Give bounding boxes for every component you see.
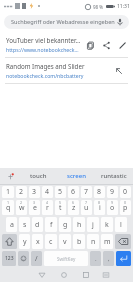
staticText: j (92, 220, 94, 230)
button[interactable]: Backspace (115, 234, 131, 249)
button[interactable]: runtastic (95, 168, 133, 184)
button[interactable]: Shift (2, 234, 17, 249)
button[interactable]: 1 (2, 200, 14, 215)
staticText: SwiftKey (57, 256, 76, 262)
staticText: p (123, 203, 128, 213)
staticText: . (95, 255, 97, 263)
button[interactable]: h (73, 217, 85, 232)
button[interactable]: touch (20, 168, 57, 184)
staticText: t (59, 203, 62, 213)
button[interactable]: Hide keyboard (100, 269, 112, 281)
button[interactable]: k (101, 217, 113, 232)
button[interactable]: Copy (82, 37, 98, 53)
button[interactable]: g (59, 217, 71, 232)
staticText: 2 (19, 187, 24, 197)
button[interactable]: b (73, 234, 85, 249)
button[interactable]: 6 (68, 186, 79, 198)
button[interactable]: 0 (120, 200, 131, 215)
button[interactable]: / (31, 251, 42, 266)
staticText: 6 (71, 187, 76, 197)
button[interactable]: 9 (107, 200, 118, 215)
staticText: x (36, 237, 40, 247)
button[interactable]: Edit (114, 37, 130, 53)
button[interactable]: Insert suggestion (111, 63, 127, 79)
staticText: 0 (124, 200, 127, 205)
button[interactable]: Recents (80, 269, 92, 281)
staticText: 9 (110, 187, 115, 197)
staticText: 1 (7, 200, 10, 205)
button[interactable]: 9 (107, 186, 118, 198)
staticText: screen (67, 172, 86, 180)
staticText: r (46, 203, 49, 213)
staticText: u (84, 203, 89, 213)
button[interactable]: j (87, 217, 99, 232)
staticText: 3 (32, 187, 37, 197)
button[interactable]: YouTuber viel bekannter… (0, 32, 133, 57)
button[interactable]: 5 (55, 200, 66, 215)
button[interactable]: 4 (42, 200, 53, 215)
button[interactable]: Stickers (0, 168, 20, 184)
staticText: YouTuber viel bekannter… (6, 36, 81, 44)
button[interactable]: 8 (94, 186, 105, 198)
button[interactable]: 0 (120, 186, 131, 198)
button[interactable]: n (87, 234, 99, 249)
button[interactable]: Enter (116, 251, 131, 266)
staticText: touch (30, 172, 47, 180)
button[interactable]: l (115, 217, 127, 232)
staticText: d (35, 220, 40, 230)
staticText: 123 (5, 255, 14, 262)
staticText: 8 (97, 187, 102, 197)
button[interactable]: 7 (81, 200, 92, 215)
staticText: 3 (33, 200, 36, 205)
staticText: 7 (85, 200, 88, 205)
button[interactable]: 1 (2, 186, 14, 198)
staticText: 5 (59, 200, 62, 205)
button[interactable]: Back (36, 269, 48, 281)
staticText: 7 (84, 187, 89, 197)
button[interactable]: Share (98, 37, 114, 53)
button[interactable]: Home (58, 269, 70, 281)
button[interactable]: Suchbegriff oder Webadresse eingeben (4, 15, 129, 29)
button[interactable]: d (32, 217, 43, 232)
staticText: 0 (123, 187, 128, 197)
button[interactable]: y (19, 234, 30, 249)
staticText: notebookcheck.com/nbcbattery (6, 72, 84, 79)
button[interactable]: 5 (55, 186, 66, 198)
staticText: c (49, 237, 53, 247)
button[interactable]: x (32, 234, 43, 249)
button[interactable]: 3 (29, 200, 40, 215)
button[interactable]: s (19, 217, 30, 232)
button[interactable]: 2 (16, 186, 27, 198)
staticText: runtastic (101, 172, 127, 180)
button[interactable]: . (90, 251, 101, 266)
button[interactable]: 3 (29, 186, 40, 198)
button[interactable]: 4 (42, 186, 53, 198)
button[interactable]: f (45, 217, 57, 232)
button[interactable]: c (45, 234, 57, 249)
staticText: 4 (46, 200, 49, 205)
staticText: 98 % (93, 4, 104, 10)
button[interactable]: 2 (16, 200, 27, 215)
button[interactable]: Space (44, 251, 88, 266)
button[interactable]: m (101, 234, 113, 249)
button[interactable]: 6 (68, 200, 79, 215)
button[interactable]: screen (57, 168, 95, 184)
staticText: 6 (72, 200, 75, 205)
staticText: n (91, 237, 96, 247)
staticText: h (77, 220, 82, 230)
staticText: b (77, 237, 82, 247)
button[interactable]: Emoji (18, 251, 29, 266)
button[interactable]: Voice search (115, 17, 125, 27)
button[interactable]: v (59, 234, 71, 249)
button[interactable]: a (6, 217, 17, 232)
button[interactable]: 7 (81, 186, 92, 198)
button[interactable]: , (103, 251, 114, 266)
button[interactable]: Random Images and Slider (0, 58, 133, 83)
button[interactable]: 8 (94, 200, 105, 215)
staticText: 9 (111, 200, 114, 205)
staticText: https://www.notebookcheck… (6, 46, 79, 53)
staticText: y (23, 237, 27, 247)
staticText: w (19, 203, 25, 213)
staticText: 11:31 (117, 3, 130, 10)
button[interactable]: 123 (2, 251, 16, 266)
